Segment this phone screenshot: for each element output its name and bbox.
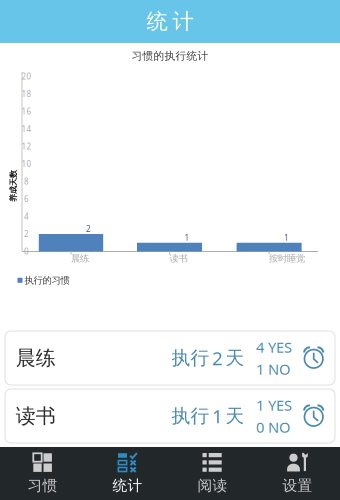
staticText: 2 [24, 229, 29, 239]
staticText: 8 [24, 176, 29, 187]
staticText: 2 [86, 224, 91, 234]
staticText: 18 [21, 89, 31, 99]
staticText: 养成天数 [0, 181, 29, 191]
staticText: 执行 [171, 404, 209, 427]
staticText: 6 [24, 194, 29, 204]
staticText: 4 YES [256, 337, 292, 357]
staticText: 习惯 [27, 476, 57, 494]
staticText: 20 [21, 71, 31, 82]
staticText: 16 [21, 106, 31, 117]
staticText: 12 [21, 141, 31, 152]
staticText: 天 [225, 346, 244, 369]
staticText: 天 [225, 404, 244, 427]
staticText: 0 NO [256, 417, 290, 437]
staticText: 1 [212, 404, 223, 428]
staticText: 统 [146, 8, 167, 35]
staticText: 按时睡觉 [269, 253, 305, 264]
staticText: 10 [21, 159, 31, 169]
staticText: 读书 [16, 404, 56, 428]
staticText: 1 NO [256, 359, 290, 379]
staticText: 统计 [112, 476, 142, 494]
button[interactable]: 统计 [85, 447, 170, 500]
staticText: 1 [284, 232, 289, 243]
staticText: 设置 [282, 476, 312, 494]
staticText: 2 [212, 346, 223, 370]
staticText: 读书 [169, 253, 187, 264]
staticText: 阅读 [197, 476, 227, 494]
staticText: 0 [24, 246, 29, 257]
button[interactable]: 晨练 [5, 331, 335, 385]
button[interactable]: 设置 [255, 447, 340, 500]
button[interactable]: 阅读 [170, 447, 255, 500]
staticText: 晨练 [16, 346, 56, 370]
staticText: 计 [172, 8, 193, 35]
staticText: 4 [24, 211, 29, 222]
staticText: 习惯的执行统计 [131, 49, 208, 62]
staticText: 1 YES [256, 395, 292, 415]
button[interactable]: 读书 [5, 389, 335, 443]
staticText: 1 [184, 232, 189, 243]
staticText: 执行 [171, 346, 209, 369]
button[interactable]: 习惯 [0, 447, 85, 500]
staticText: 14 [21, 124, 31, 134]
staticText: 晨练 [71, 253, 89, 264]
staticText: 执行的习惯 [24, 275, 69, 286]
